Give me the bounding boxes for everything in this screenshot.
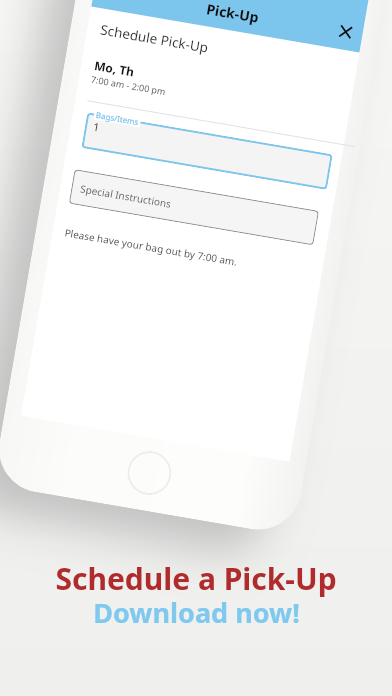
button[interactable]: 1 — [81, 112, 333, 190]
staticText: Bags/Items — [95, 109, 139, 127]
staticText: Download now! — [93, 594, 300, 631]
staticText: Schedule a Pick-Up — [55, 558, 337, 599]
staticText: 7:00 am - 2:00 pm — [90, 73, 167, 97]
staticText: Please have your bag out by 7:00 am. — [64, 225, 239, 269]
staticText: Mo, Th — [93, 57, 136, 80]
staticText: Special Instructions — [79, 181, 172, 211]
button[interactable]: Special Instructions — [69, 169, 319, 245]
staticText: Pick-Up — [205, 0, 260, 27]
staticText: Schedule Pick-Up — [99, 21, 210, 57]
button[interactable]: Close — [331, 17, 360, 46]
staticText: 1 — [92, 119, 101, 135]
